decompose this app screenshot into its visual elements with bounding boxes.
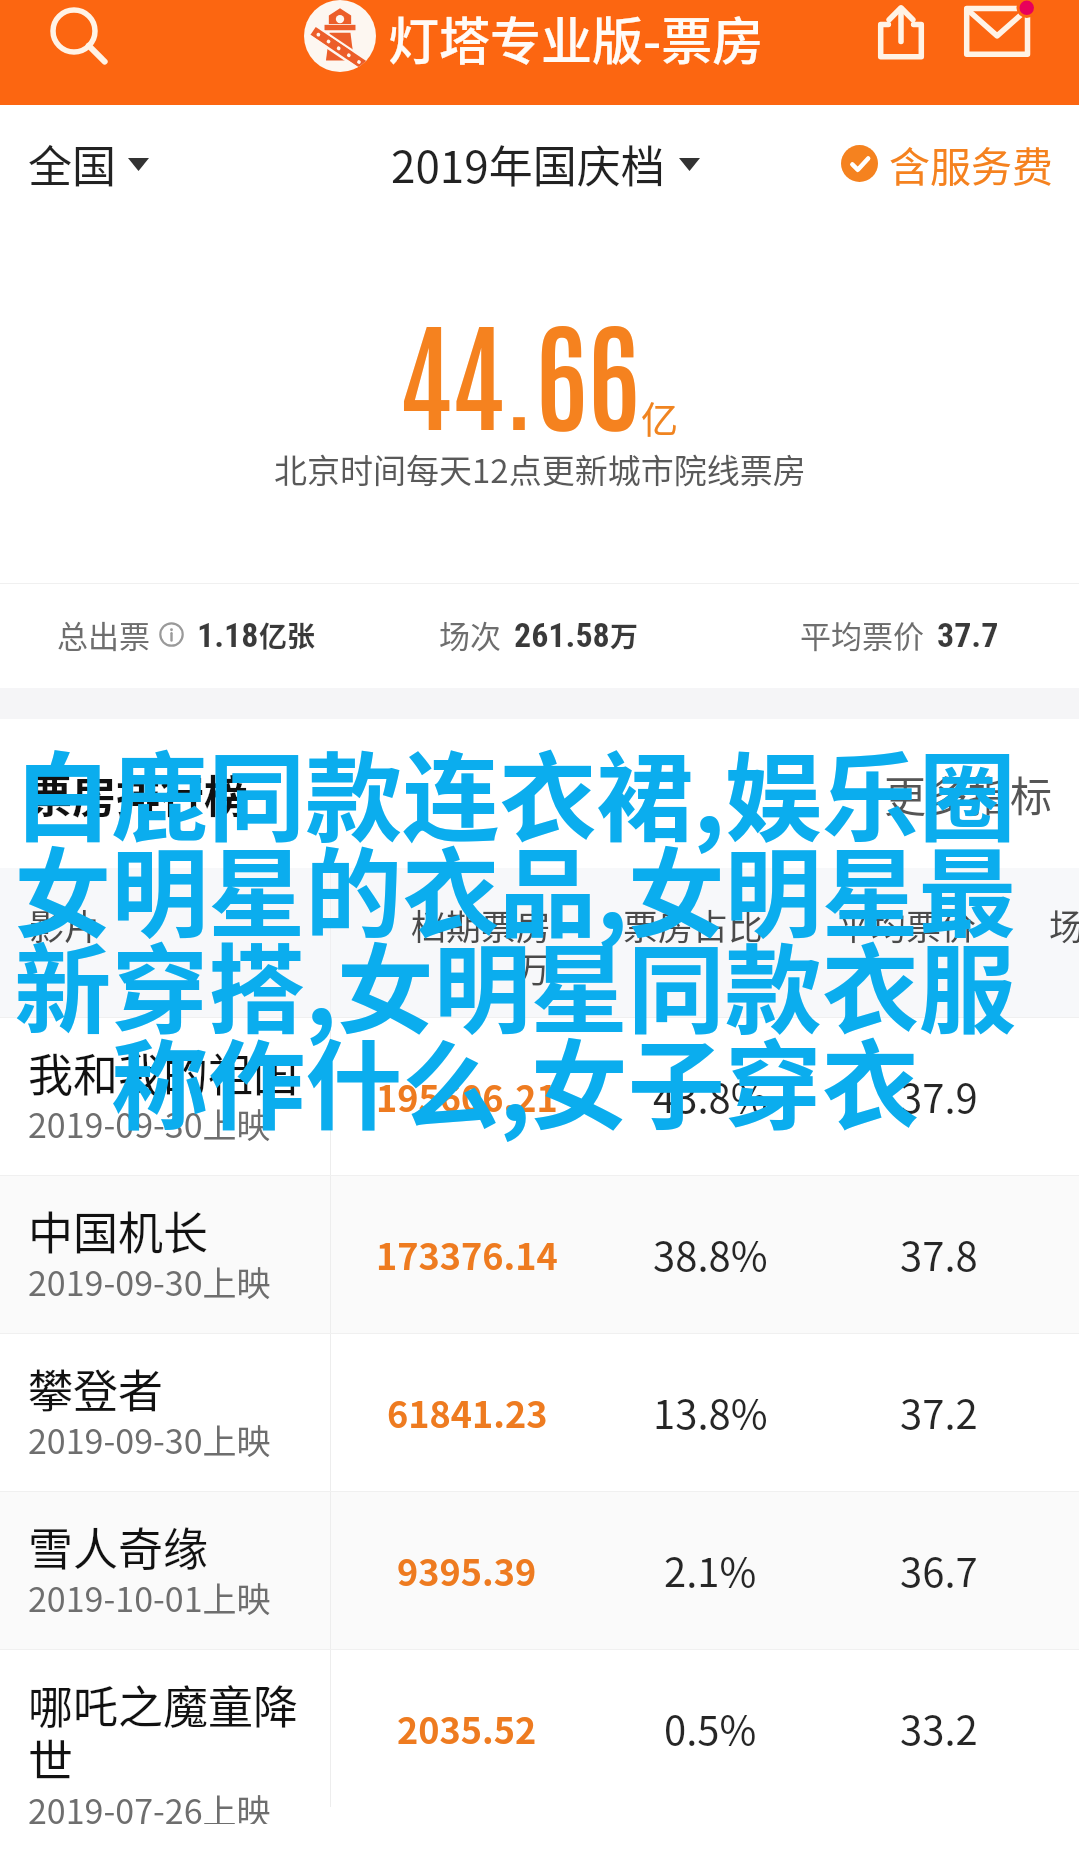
staticText: 亿张 <box>259 615 316 656</box>
button[interactable]: 更多指标 <box>884 763 1053 824</box>
staticText: 场次 <box>1049 899 1079 950</box>
staticText: 2019-09-30上映 <box>28 1257 271 1306</box>
staticText: 白鹿同款连衣裙,娱乐圈 女明星的衣品,女明星最 新穿搭,女明星同款衣服 称作什么… <box>10 720 1020 1149</box>
staticText: 全国 <box>28 132 116 196</box>
staticText: 万 <box>515 942 551 993</box>
staticText: 33.2 <box>900 1699 978 1757</box>
staticText: 2019-09-30上映 <box>28 1415 271 1464</box>
staticText: 38.8% <box>653 1225 768 1283</box>
staticText: 哪吒之魔童降世 <box>28 1672 320 1791</box>
staticText: 37.9 <box>900 1067 978 1125</box>
staticText: 37.7 <box>937 615 999 655</box>
staticText: 票房占比 <box>623 899 764 950</box>
staticText: 195606.21 <box>376 1070 558 1122</box>
staticText: 2019年国庆档 <box>391 132 665 196</box>
staticText: 36.7 <box>900 1541 978 1599</box>
staticText: 灯塔专业版-票房 <box>388 1 764 75</box>
staticText: 亿 <box>641 391 678 445</box>
staticText: 平均票价 <box>836 899 977 950</box>
staticText: 37.8 <box>900 1225 978 1283</box>
staticText: 2035.52 <box>397 1702 537 1754</box>
staticText: 档期票房 <box>411 899 552 950</box>
staticText: 影片 <box>29 899 100 950</box>
staticText: 含服务费 <box>889 134 1053 193</box>
staticText: 43.8% <box>653 1067 768 1125</box>
button[interactable]: Share <box>866 0 936 68</box>
button[interactable]: 全国 <box>28 132 149 196</box>
staticText: 万 <box>610 615 639 656</box>
button[interactable]: 中国机长 <box>0 1175 1079 1333</box>
staticText: 2019-07-26上映 <box>28 1785 271 1824</box>
staticText: 2.1% <box>664 1541 757 1599</box>
staticText: 攀登者 <box>28 1356 164 1421</box>
staticText: 中国机长 <box>28 1198 209 1263</box>
button[interactable]: Search <box>38 0 110 67</box>
staticText: 173376.14 <box>376 1228 558 1280</box>
staticText: 北京时间每天12点更新城市院线票房 <box>274 445 806 493</box>
staticText: 平均票价 <box>800 612 924 657</box>
staticText: 1.18 <box>197 615 259 655</box>
staticText: 9395.39 <box>397 1544 537 1596</box>
staticText: 37.2 <box>900 1383 978 1441</box>
staticText: 雪人奇缘 <box>28 1514 209 1579</box>
staticText: 61841.23 <box>387 1386 548 1438</box>
button[interactable]: 攀登者 <box>0 1333 1079 1491</box>
staticText: 更多指标 <box>884 763 1053 824</box>
staticText: 2019-10-01上映 <box>28 1573 271 1622</box>
staticText: 总出票 <box>57 612 150 657</box>
button[interactable]: 含服务费 <box>841 134 1053 193</box>
button[interactable]: 雪人奇缘 <box>0 1491 1079 1649</box>
button[interactable]: 我和我的祖国 <box>0 1017 1079 1175</box>
staticText: 44.66 <box>399 291 640 446</box>
staticText: 261.58 <box>514 615 610 655</box>
button[interactable]: Messages <box>961 0 1037 72</box>
button[interactable]: 2019年国庆档 <box>391 132 700 196</box>
staticText: 我和我的祖国 <box>28 1040 299 1105</box>
staticText: 2019-09-30上映 <box>28 1099 271 1148</box>
staticText: 票房排行榜 <box>28 762 248 826</box>
staticText: 场次 <box>439 612 501 657</box>
button[interactable]: 哪吒之魔童降世 <box>0 1649 1079 1807</box>
staticText: 13.8% <box>653 1383 768 1441</box>
staticText: 0.5% <box>664 1699 757 1757</box>
